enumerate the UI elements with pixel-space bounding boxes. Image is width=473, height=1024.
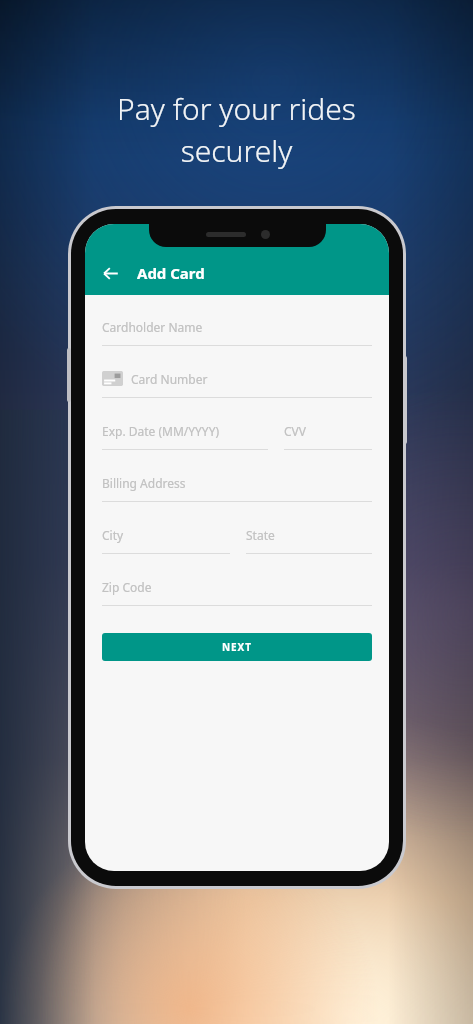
staticText: CVV xyxy=(284,423,306,439)
button[interactable]: City xyxy=(102,524,230,554)
button[interactable]: Billing Address xyxy=(102,472,372,502)
staticText: Billing Address xyxy=(102,475,186,491)
button[interactable]: Back xyxy=(95,258,125,288)
staticText: Card Number xyxy=(131,371,208,387)
button[interactable]: Zip Code xyxy=(102,576,372,606)
staticText: Zip Code xyxy=(102,579,152,595)
staticText: Add Card xyxy=(137,263,205,283)
staticText: State xyxy=(246,527,275,543)
button[interactable]: State xyxy=(246,524,372,554)
button[interactable]: NEXT xyxy=(102,633,372,661)
staticText: NEXT xyxy=(222,640,252,654)
button[interactable]: Cardholder Name xyxy=(102,316,372,346)
staticText: Exp. Date (MM/YYYY) xyxy=(102,423,220,439)
button[interactable]: Exp. Date (MM/YYYY) xyxy=(102,420,268,450)
staticText: Pay for your rides securely xyxy=(117,88,356,171)
button[interactable]: Card Number xyxy=(102,368,372,398)
button[interactable]: CVV xyxy=(284,420,372,450)
staticText: Cardholder Name xyxy=(102,319,203,335)
staticText: City xyxy=(102,527,124,543)
